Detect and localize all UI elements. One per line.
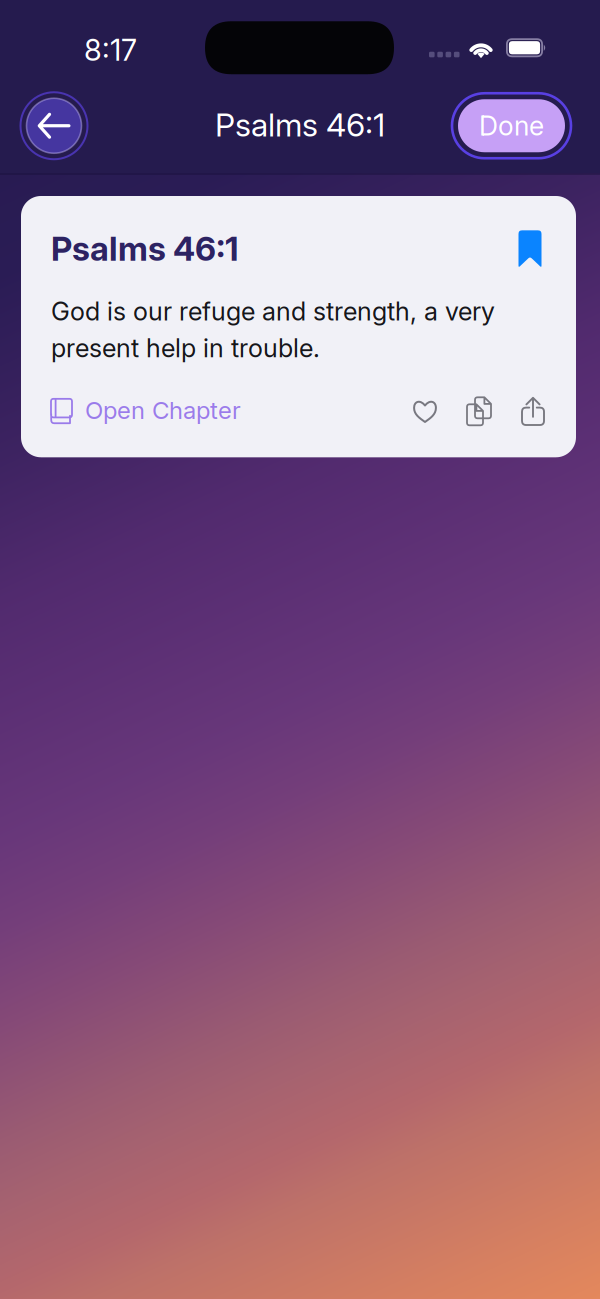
button[interactable]: Share <box>513 396 553 426</box>
button[interactable]: Favorite <box>405 396 445 426</box>
staticText: 8:17 <box>84 32 137 68</box>
staticText: Psalms 46:1 <box>51 228 239 269</box>
button[interactable]: Open Chapter <box>51 396 241 426</box>
button[interactable]: Copy <box>459 396 499 426</box>
button[interactable]: Done <box>452 93 571 158</box>
button[interactable]: Back <box>19 91 89 161</box>
staticText: Psalms 46:1 <box>215 105 385 144</box>
staticText: Done <box>479 110 544 142</box>
staticText: God is our refuge and strength, a very p… <box>51 296 495 363</box>
staticText: Open Chapter <box>85 396 241 425</box>
button[interactable]: Bookmark <box>513 227 547 267</box>
